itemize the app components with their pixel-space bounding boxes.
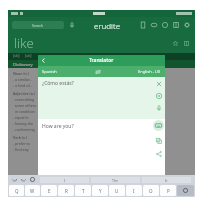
staticText: erudite: [94, 20, 121, 31]
staticText: Spanish: [42, 69, 57, 74]
button[interactable]: Q: [9, 185, 24, 196]
staticText: P: [167, 188, 170, 194]
staticText: - resembling: [13, 97, 35, 102]
button[interactable]: Save: [183, 40, 190, 47]
staticText: - a similar...: [13, 77, 32, 82]
button[interactable]: Y: [92, 185, 108, 196]
button[interactable]: Voice input: [154, 103, 163, 112]
staticText: ¿Cómo estás?: [42, 80, 74, 87]
staticText: How are you?: [42, 123, 74, 130]
staticText: The: [112, 178, 119, 183]
staticText: [uk]: [13, 53, 20, 58]
button[interactable]: Favorite: [172, 40, 179, 47]
button[interactable]: Search: [12, 21, 64, 29]
staticText: Q: [15, 188, 19, 194]
button[interactable]: Copy: [154, 136, 163, 145]
button[interactable]: Redo: [20, 176, 27, 183]
staticText: - having the: [13, 121, 33, 126]
staticText: Dictionary: [13, 62, 33, 67]
button[interactable]: History: [161, 21, 169, 29]
button[interactable]: Emoji: [29, 176, 36, 183]
staticText: like: [14, 34, 34, 52]
button[interactable]: Backspace: [177, 185, 194, 196]
button[interactable]: T: [75, 185, 91, 196]
button[interactable]: I: [40, 177, 89, 183]
button[interactable]: Undo: [11, 176, 18, 183]
button[interactable]: Speak: [154, 91, 163, 100]
button[interactable]: R: [58, 185, 74, 196]
staticText: E: [48, 188, 51, 194]
button[interactable]: Back: [38, 55, 49, 66]
staticText: some others: [13, 103, 37, 108]
button[interactable]: Keyboard: [153, 120, 164, 131]
button[interactable]: P: [160, 185, 176, 196]
staticText: - conforming: [13, 127, 35, 132]
staticText: English - US: [138, 69, 161, 74]
staticText: W: [30, 188, 35, 194]
staticText: Y: [99, 188, 102, 194]
button[interactable]: O: [143, 185, 159, 196]
staticText: - equal in: [13, 115, 29, 120]
button[interactable]: Notes: [139, 21, 147, 29]
staticText: I: [64, 178, 66, 183]
staticText: It: [165, 178, 168, 183]
button[interactable]: Voice search: [68, 21, 76, 29]
button[interactable]: Bookmark: [172, 21, 180, 29]
staticText: Noun (n.): [13, 71, 29, 76]
button[interactable]: I: [126, 185, 142, 196]
button[interactable]: It: [142, 177, 191, 183]
button[interactable]: Settings: [183, 21, 191, 29]
staticText: Adjective (a.): [13, 91, 35, 96]
button[interactable]: Translate: [150, 21, 158, 29]
staticText: in condition: [13, 109, 35, 114]
staticText: O: [149, 188, 153, 194]
staticText: R: [65, 188, 68, 194]
staticText: Search: [32, 23, 44, 28]
button[interactable]: W: [25, 185, 40, 196]
button[interactable]: E: [41, 185, 57, 196]
button[interactable]: Clear: [154, 79, 163, 88]
staticText: T: [82, 188, 85, 194]
staticText: I: [133, 188, 135, 194]
staticText: - prefer to: [13, 141, 30, 146]
staticText: - a kind of...: [13, 83, 33, 88]
button[interactable]: Swap languages: [93, 67, 102, 76]
button[interactable]: English - US: [138, 69, 161, 74]
button[interactable]: The: [91, 177, 140, 183]
button[interactable]: Spanish: [42, 69, 57, 74]
button[interactable]: Share: [154, 149, 163, 158]
staticText: Verb (v.): [13, 135, 27, 140]
staticText: Translator: [89, 57, 114, 64]
staticText: - find any: [13, 147, 29, 152]
button[interactable]: U: [109, 185, 125, 196]
staticText: U: [115, 188, 119, 194]
staticText: [uk]: [25, 53, 32, 58]
